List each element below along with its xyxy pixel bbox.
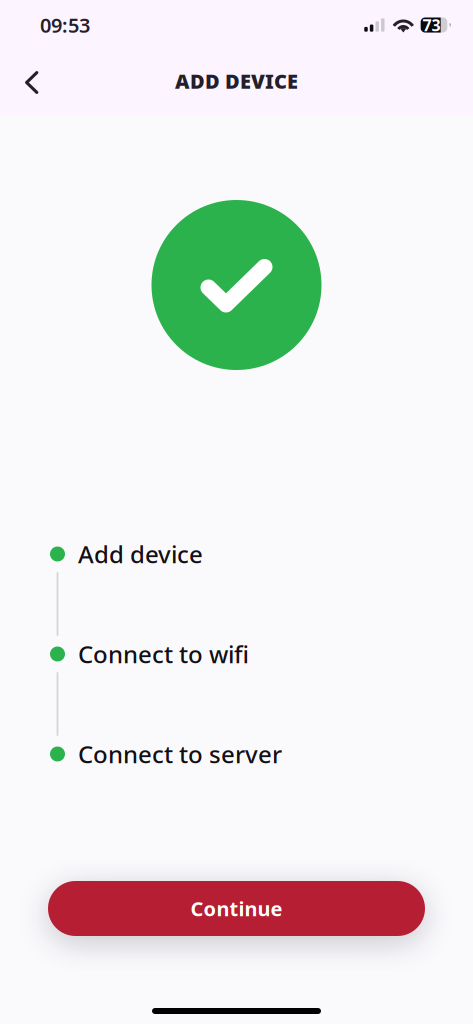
staticText: Continue	[190, 895, 282, 922]
staticText: Connect to wifi	[78, 638, 249, 670]
staticText: 73	[422, 14, 440, 36]
staticText: 09:53	[40, 12, 90, 38]
staticText: Add device	[78, 538, 203, 570]
staticText: ADD DEVICE	[175, 68, 298, 94]
button[interactable]: Back	[0, 59, 54, 106]
button[interactable]: Continue	[48, 881, 425, 936]
staticText: Connect to server	[78, 738, 282, 770]
